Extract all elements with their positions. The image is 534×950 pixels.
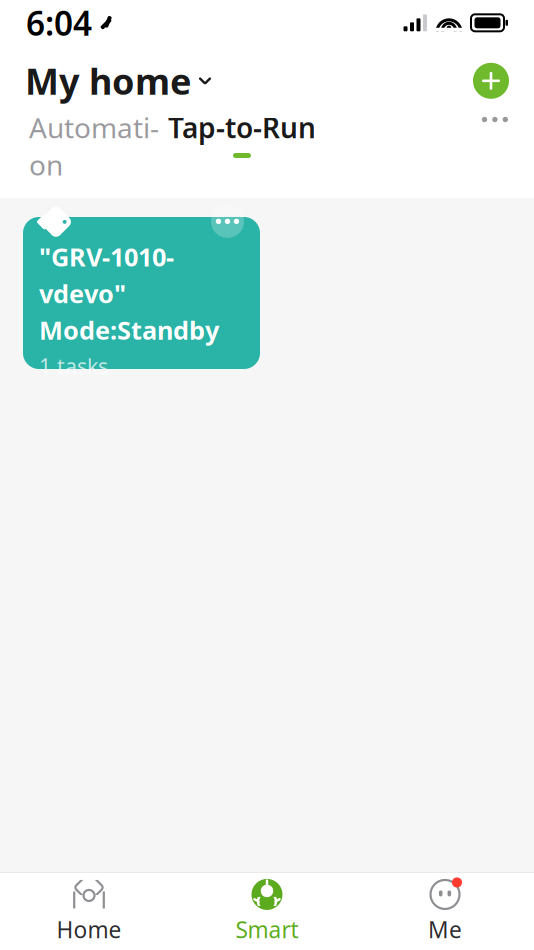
button[interactable]: Automation: [21, 109, 167, 195]
staticText: Home: [56, 914, 121, 944]
button[interactable]: Smart: [178, 873, 356, 950]
button[interactable]: Me: [356, 873, 534, 950]
button[interactable]: Add: [473, 63, 509, 99]
staticText: Tap-to-Run: [168, 109, 316, 146]
button[interactable]: My home: [25, 49, 212, 113]
button[interactable]: Scene options: [211, 205, 244, 238]
staticText: 6:04: [26, 1, 92, 45]
staticText: Automation: [29, 109, 159, 183]
staticText: 1 tasks: [39, 352, 108, 380]
button[interactable]: More options: [474, 107, 516, 132]
staticText: Me: [428, 914, 462, 944]
button[interactable]: "GRV-1010-vdevo" Mode:Standby: [23, 217, 260, 369]
button[interactable]: Home: [0, 873, 178, 950]
staticText: My home: [25, 57, 191, 105]
staticText: Smart: [235, 914, 298, 944]
button[interactable]: Tap-to-Run: [167, 109, 317, 158]
staticText: "GRV-1010-vdevo" Mode:Standby: [39, 240, 219, 347]
